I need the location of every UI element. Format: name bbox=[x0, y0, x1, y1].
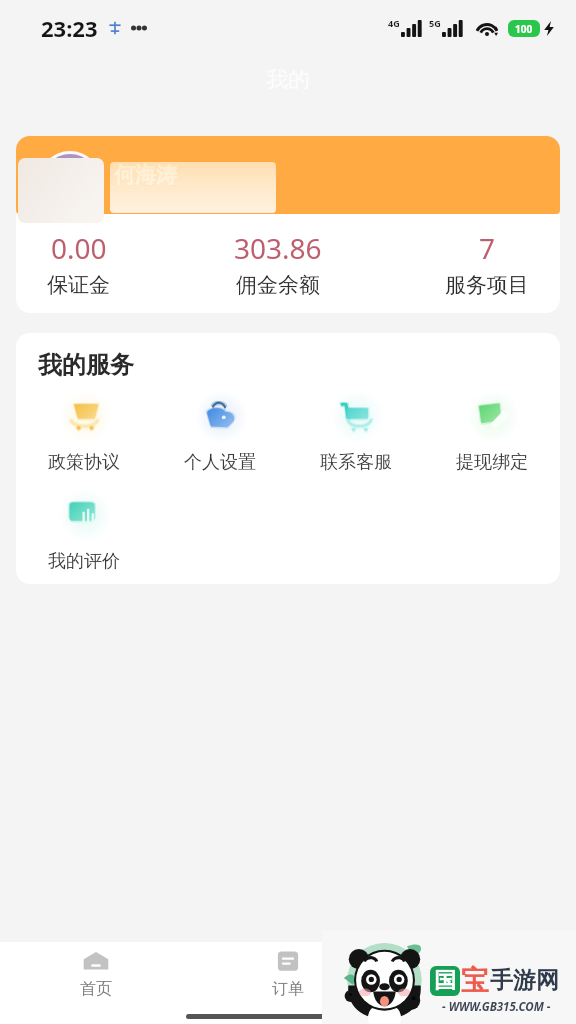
staticText: 我的评价 bbox=[48, 550, 120, 573]
staticText: 我的服务 bbox=[38, 350, 134, 380]
staticText: 23:23 bbox=[41, 13, 98, 43]
staticText: 政策协议 bbox=[48, 451, 120, 474]
button[interactable]: 303.86 bbox=[208, 221, 348, 306]
staticText: 我的 bbox=[464, 979, 496, 999]
button[interactable]: 政策协议 bbox=[16, 396, 152, 474]
staticText: 保证金 bbox=[47, 272, 110, 298]
button[interactable]: 首页 bbox=[0, 951, 192, 999]
button[interactable]: 我的评价 bbox=[16, 495, 152, 573]
staticText: 国 bbox=[434, 967, 456, 995]
staticText: 首页 bbox=[80, 979, 112, 999]
staticText: 提现绑定 bbox=[456, 451, 528, 474]
staticText: 0.00 bbox=[51, 229, 107, 267]
staticText: 303.86 bbox=[234, 229, 322, 267]
staticText: 5G bbox=[429, 17, 441, 29]
staticText: 订单 bbox=[272, 979, 304, 999]
button[interactable]: 联系客服 bbox=[288, 396, 424, 474]
button[interactable]: 我的 bbox=[384, 951, 576, 999]
button[interactable]: 个人设置 bbox=[152, 396, 288, 474]
staticText: 手游网 bbox=[490, 966, 559, 995]
staticText: 个人设置 bbox=[184, 451, 256, 474]
button[interactable]: 订单 bbox=[192, 951, 384, 999]
staticText: 服务项目 bbox=[445, 272, 529, 298]
button[interactable]: 0.00 bbox=[21, 221, 136, 306]
staticText: 何海涛 bbox=[114, 162, 177, 188]
staticText: 7 bbox=[479, 229, 496, 267]
staticText: - WWW.GB315.COM - bbox=[442, 999, 551, 1015]
button[interactable]: 提现绑定 bbox=[424, 396, 560, 474]
staticText: 联系客服 bbox=[320, 451, 392, 474]
staticText: 4G bbox=[388, 17, 400, 29]
staticText: 100 bbox=[515, 22, 533, 36]
staticText: 我的 bbox=[266, 66, 310, 94]
button[interactable]: 7 bbox=[419, 221, 555, 306]
staticText: 宝 bbox=[461, 963, 489, 998]
button[interactable]: 何海涛 bbox=[16, 136, 560, 214]
staticText: 佣金余额 bbox=[236, 272, 320, 298]
